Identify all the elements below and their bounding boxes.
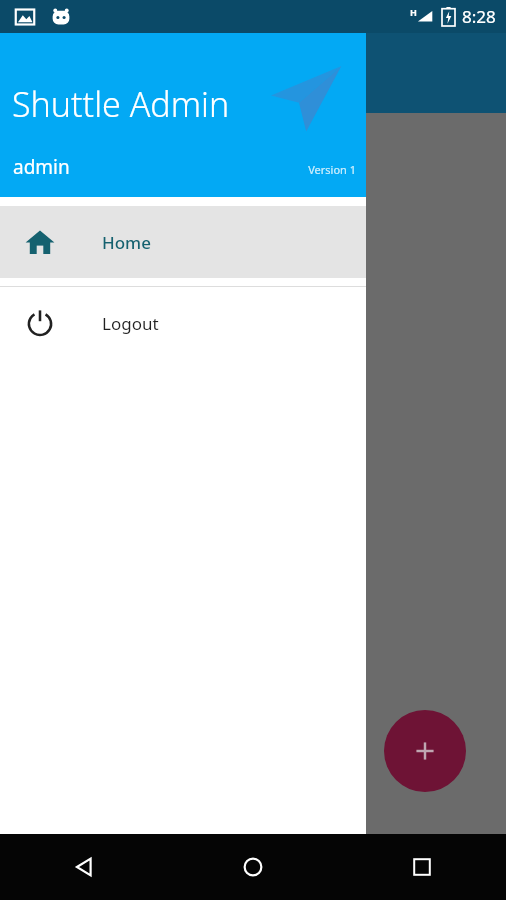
staticText: Version 1 bbox=[308, 162, 356, 177]
staticText: H bbox=[410, 6, 417, 18]
button[interactable]: Logout bbox=[0, 287, 366, 359]
staticText: Logout bbox=[102, 312, 159, 335]
button[interactable]: Home bbox=[0, 206, 366, 278]
staticText: 8:28 bbox=[462, 5, 496, 28]
button[interactable]: Home bbox=[168, 834, 337, 900]
staticText: Home bbox=[102, 231, 151, 254]
staticText: admin bbox=[13, 154, 70, 180]
button[interactable]: Recents bbox=[337, 834, 506, 900]
button[interactable]: Back bbox=[0, 834, 168, 900]
button[interactable]: Add bbox=[384, 710, 466, 792]
staticText: Shuttle Admin bbox=[12, 81, 230, 127]
